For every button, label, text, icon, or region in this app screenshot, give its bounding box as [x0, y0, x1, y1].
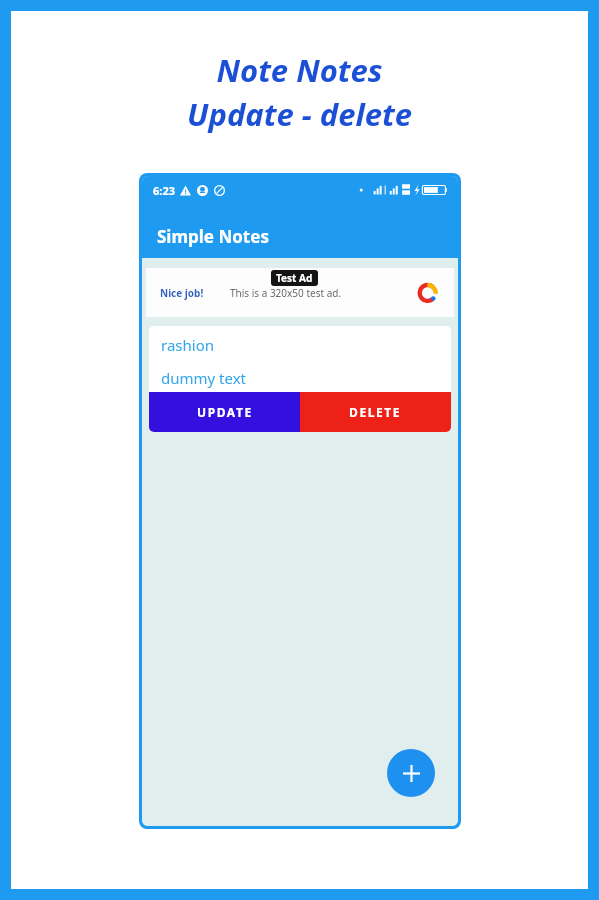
- button[interactable]: DELETE: [300, 392, 451, 432]
- button[interactable]: Nice job!: [146, 268, 454, 317]
- button[interactable]: UPDATE: [149, 392, 300, 432]
- staticText: 6:23: [153, 183, 175, 198]
- button[interactable]: Add note: [387, 749, 435, 797]
- staticText: rashion: [161, 335, 214, 355]
- staticText: DELETE: [349, 404, 402, 420]
- staticText: Note Notes: [216, 49, 383, 91]
- staticText: This is a 320x50 test ad.: [230, 286, 342, 300]
- staticText: Nice job!: [160, 286, 204, 300]
- staticText: dummy text: [161, 368, 247, 388]
- staticText: Test Ad: [276, 271, 313, 285]
- staticText: Simple Notes: [157, 225, 269, 248]
- staticText: Update - delete: [187, 93, 412, 135]
- staticText: UPDATE: [197, 404, 253, 420]
